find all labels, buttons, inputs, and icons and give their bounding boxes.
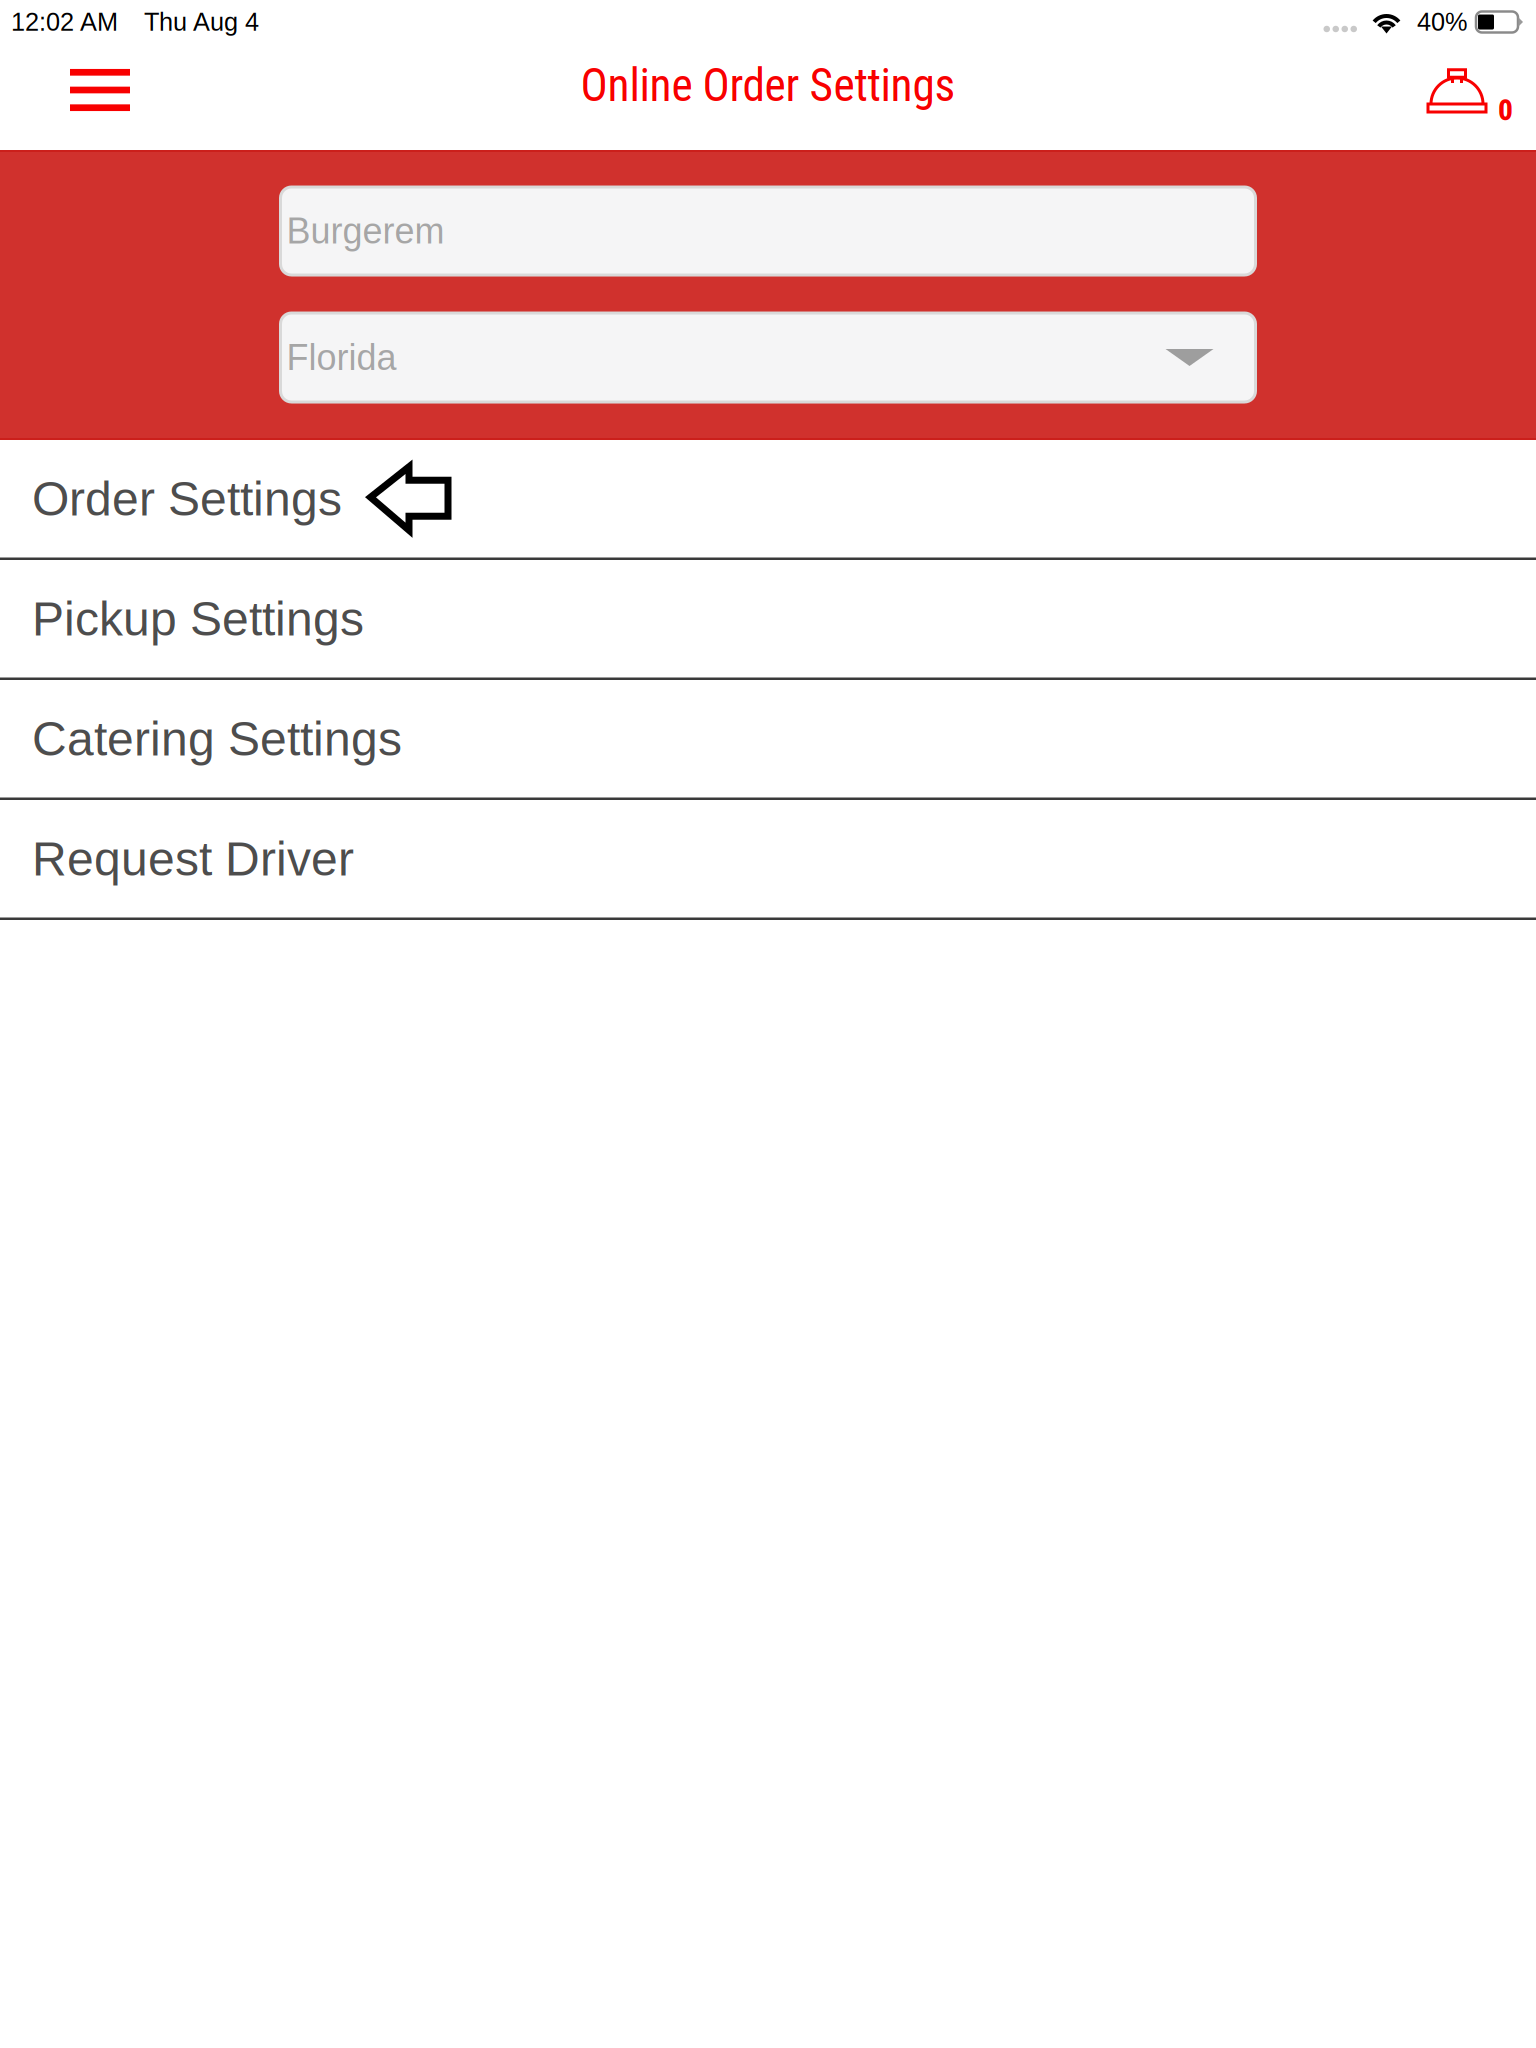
staticText: Thu Aug 4 <box>144 8 259 36</box>
button[interactable]: Request Driver <box>0 800 1536 917</box>
button[interactable]: Pickup Settings <box>0 560 1536 677</box>
button[interactable]: Orders <box>1422 54 1536 130</box>
button[interactable]: Order Settings <box>0 440 1536 557</box>
staticText: Request Driver <box>32 832 354 885</box>
staticText: 12:02 AM <box>11 8 118 36</box>
staticText: 40% <box>1417 8 1468 36</box>
button[interactable]: Burgerem <box>280 187 1255 275</box>
staticText: Burgerem <box>286 211 444 251</box>
staticText: 0 <box>1498 93 1513 127</box>
staticText: Order Settings <box>32 472 342 525</box>
button[interactable]: Catering Settings <box>0 680 1536 797</box>
staticText: Florida <box>286 337 396 378</box>
staticText: Online Order Settings <box>580 59 955 112</box>
staticText: Catering Settings <box>32 712 402 765</box>
staticText: Pickup Settings <box>32 592 364 645</box>
button[interactable]: Menu <box>54 53 146 127</box>
button[interactable]: Florida <box>280 313 1255 402</box>
